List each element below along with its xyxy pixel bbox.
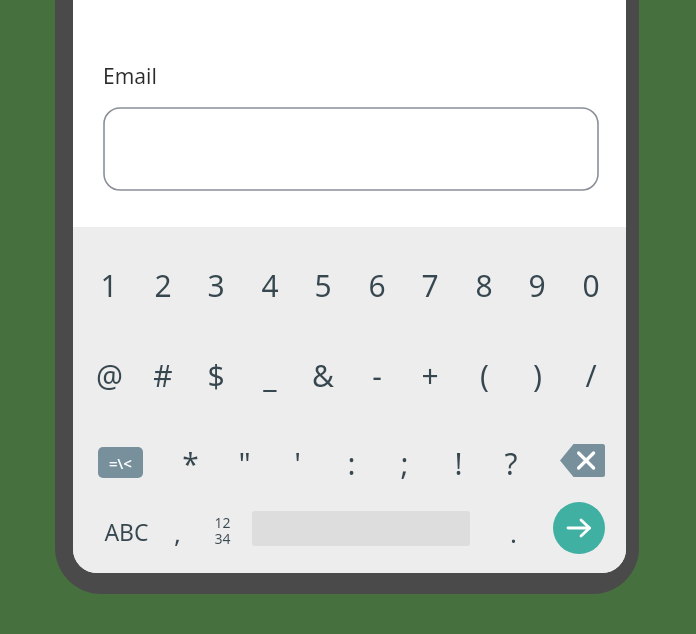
staticText: * xyxy=(182,443,199,484)
staticText: . xyxy=(510,515,517,550)
button[interactable]: . xyxy=(485,511,542,553)
staticText: + xyxy=(421,355,439,396)
staticText: $ xyxy=(207,355,225,396)
button[interactable]: 9 xyxy=(504,261,570,309)
button[interactable]: ' xyxy=(264,439,330,487)
staticText: 5 xyxy=(314,265,332,306)
staticText: 3 xyxy=(207,265,225,306)
button[interactable] xyxy=(103,107,599,191)
staticText: @ xyxy=(96,355,123,396)
button[interactable]: : xyxy=(318,439,384,487)
staticText: 9 xyxy=(528,265,546,306)
staticText: ; xyxy=(400,443,409,484)
staticText: ) xyxy=(533,355,542,396)
staticText: ! xyxy=(454,443,463,484)
staticText: / xyxy=(585,355,597,396)
button[interactable]: $ xyxy=(183,351,249,399)
button[interactable]: + xyxy=(397,351,463,399)
button[interactable]: ) xyxy=(504,351,570,399)
button[interactable]: 12 34 xyxy=(201,510,243,550)
button[interactable]: ? xyxy=(478,439,544,487)
staticText: : xyxy=(347,443,356,484)
button[interactable]: 3 xyxy=(183,261,249,309)
button[interactable]: / xyxy=(558,351,624,399)
button[interactable]: , xyxy=(149,511,206,553)
button[interactable]: - xyxy=(344,351,410,399)
staticText: # xyxy=(153,355,173,396)
button[interactable]: ABC xyxy=(101,513,152,550)
staticText: =\< xyxy=(109,453,132,473)
button[interactable]: More symbols xyxy=(98,447,143,478)
staticText: ' xyxy=(294,443,301,484)
button[interactable]: " xyxy=(211,439,277,487)
staticText: 12 34 xyxy=(214,513,231,548)
staticText: 1 xyxy=(100,265,118,306)
staticText: Email xyxy=(103,62,157,91)
button[interactable]: 4 xyxy=(237,261,303,309)
button[interactable]: 2 xyxy=(130,261,196,309)
button[interactable]: 0 xyxy=(558,261,624,309)
button[interactable]: ( xyxy=(451,351,517,399)
button[interactable]: 5 xyxy=(290,261,356,309)
staticText: 0 xyxy=(582,265,600,306)
button[interactable]: * xyxy=(157,439,223,487)
staticText: ( xyxy=(480,355,489,396)
button[interactable]: # xyxy=(130,351,196,399)
staticText: 2 xyxy=(154,265,172,306)
staticText: " xyxy=(238,443,251,484)
button[interactable]: Backspace xyxy=(560,444,605,477)
button[interactable]: 8 xyxy=(451,261,517,309)
button[interactable]: ! xyxy=(425,439,491,487)
staticText: _ xyxy=(263,355,277,396)
staticText: & xyxy=(312,355,334,396)
button[interactable]: @ xyxy=(76,351,142,399)
button[interactable]: 1 xyxy=(76,261,142,309)
staticText: 6 xyxy=(368,265,386,306)
staticText: 4 xyxy=(261,265,279,306)
staticText: , xyxy=(174,515,181,550)
button[interactable]: _ xyxy=(237,351,303,399)
button[interactable]: 7 xyxy=(397,261,463,309)
button[interactable]: 6 xyxy=(344,261,410,309)
button[interactable]: Enter xyxy=(553,502,605,554)
staticText: - xyxy=(372,355,382,396)
button[interactable]: ; xyxy=(371,439,437,487)
staticText: ABC xyxy=(104,516,149,547)
staticText: 8 xyxy=(475,265,493,306)
staticText: ? xyxy=(504,443,518,484)
staticText: 7 xyxy=(421,265,439,306)
button[interactable]: & xyxy=(290,351,356,399)
